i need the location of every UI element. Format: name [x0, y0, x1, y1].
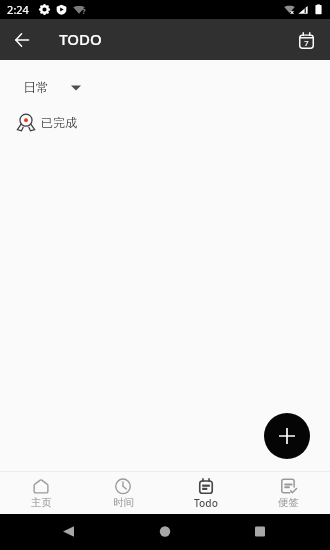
staticText: TODO [59, 29, 102, 49]
button[interactable]: 日常 [21, 74, 83, 102]
button[interactable]: 已完成 [0, 102, 330, 139]
button[interactable]: 时间 [82, 472, 164, 514]
staticText: 7 [304, 38, 309, 48]
staticText: 2:24 [7, 2, 29, 17]
button[interactable]: Home [145, 514, 185, 550]
button[interactable]: Todo [164, 472, 247, 514]
staticText: 时间 [113, 496, 134, 509]
staticText: Todo [194, 496, 218, 510]
button[interactable]: 便签 [247, 472, 330, 514]
staticText: 主页 [31, 496, 52, 509]
button[interactable]: Recents [240, 514, 280, 550]
staticText: 日常 [23, 80, 49, 96]
button[interactable]: 主页 [0, 472, 82, 514]
button[interactable]: Add [264, 413, 310, 459]
staticText: 已完成 [41, 115, 77, 130]
button[interactable]: Back [48, 514, 88, 550]
button[interactable]: Calendar [290, 24, 322, 56]
staticText: 便签 [278, 496, 299, 509]
staticText: ? [82, 7, 86, 17]
button[interactable]: Back [7, 25, 37, 55]
